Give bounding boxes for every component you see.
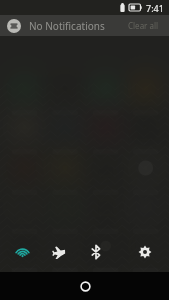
staticText: No Notifications — [29, 19, 105, 33]
button[interactable]: Wi-Fi — [10, 240, 34, 264]
staticText: Clear all — [128, 20, 159, 31]
button[interactable]: Airplane mode — [47, 240, 71, 264]
button[interactable]: Notifications — [7, 19, 21, 33]
staticText: 7:41 — [146, 2, 164, 14]
button[interactable]: Bluetooth — [84, 240, 108, 264]
button[interactable]: Settings — [133, 240, 157, 264]
button[interactable]: Clear all — [126, 18, 161, 33]
button[interactable]: Home — [74, 275, 96, 297]
